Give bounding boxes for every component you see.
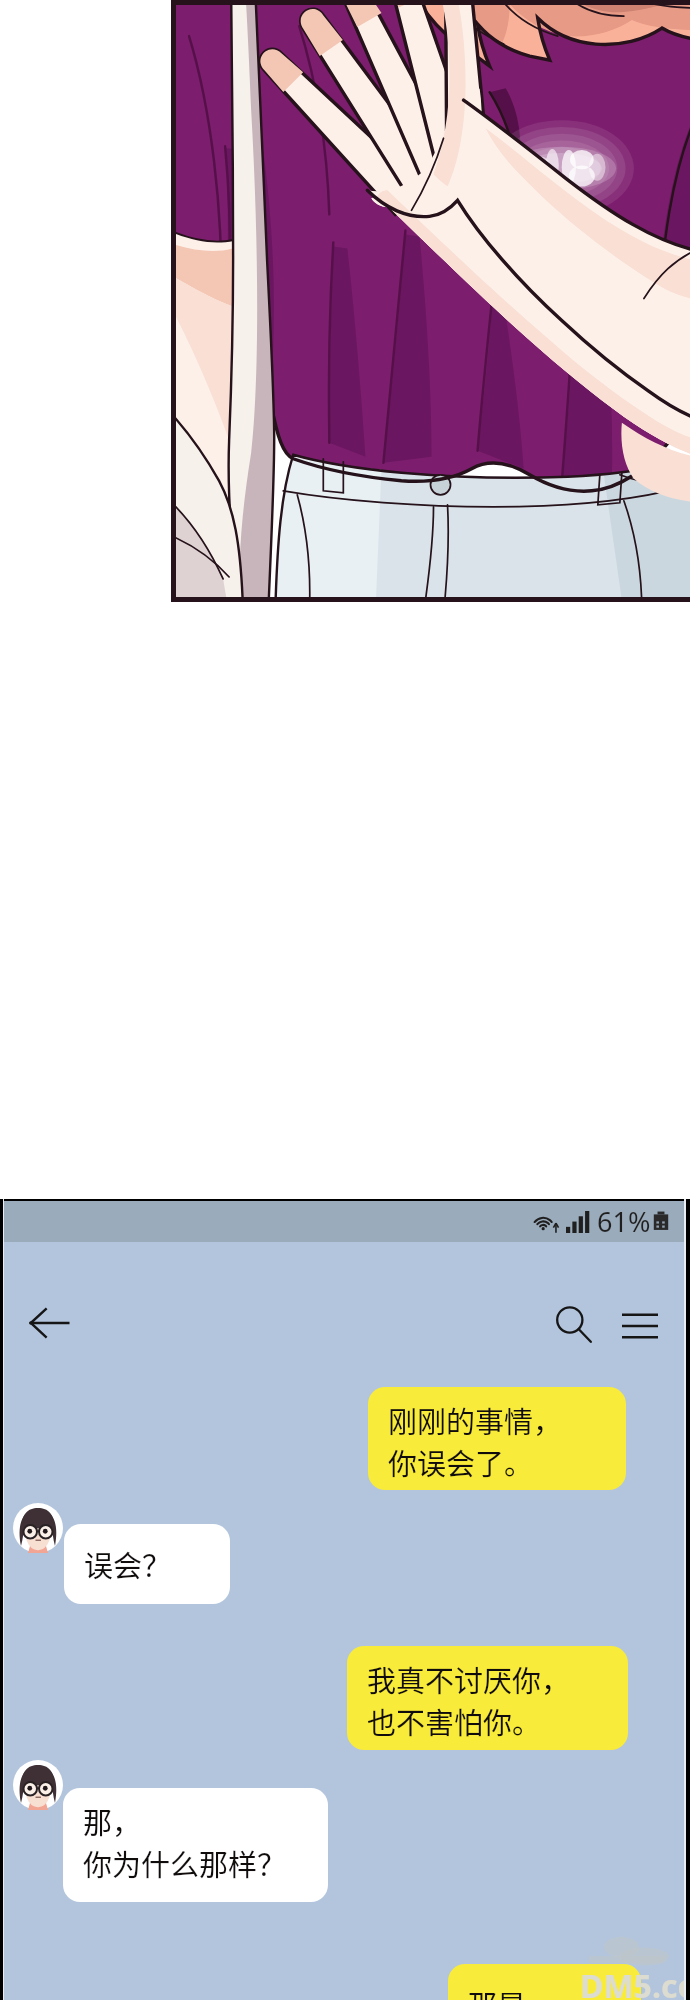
button[interactable]: 那是... bbox=[448, 1964, 641, 2000]
button[interactable]: Menu bbox=[620, 1306, 660, 1346]
staticText: 你为什么那样？ bbox=[83, 1842, 287, 1884]
staticText: 你误会了。 bbox=[388, 1441, 534, 1483]
button[interactable]: Search bbox=[553, 1304, 595, 1346]
staticText: 我真不讨厌你， bbox=[367, 1658, 571, 1700]
button[interactable]: 刚刚的事情， bbox=[368, 1387, 626, 1490]
staticText: 那是... bbox=[468, 1983, 551, 2000]
staticText: 刚刚的事情， bbox=[388, 1399, 563, 1441]
button[interactable]: 我真不讨厌你， bbox=[347, 1646, 628, 1750]
staticText: 也不害怕你。 bbox=[367, 1700, 542, 1742]
button[interactable]: 误会？ bbox=[64, 1524, 230, 1604]
staticText: 61% bbox=[597, 1203, 651, 1240]
staticText: 误会？ bbox=[84, 1543, 172, 1585]
button[interactable]: 那， bbox=[63, 1788, 328, 1902]
staticText: 那， bbox=[83, 1800, 142, 1842]
button[interactable]: Back bbox=[26, 1300, 72, 1346]
staticText: DM5.com bbox=[580, 1964, 690, 2000]
